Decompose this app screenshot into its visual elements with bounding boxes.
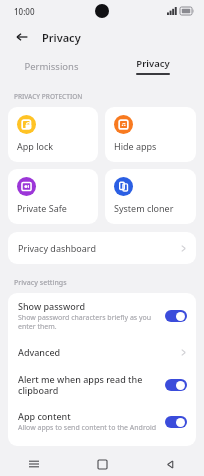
staticText: Allow apps to send content to the Androi… [18,423,157,433]
staticText: Permissions [24,60,79,73]
staticText: App content [18,410,71,422]
staticText: Hide apps [114,140,157,152]
button[interactable]: Advanced [8,338,196,366]
button[interactable]: Back [12,27,32,47]
button[interactable]: Private Safe [8,169,98,224]
button[interactable]: Show password [8,293,196,338]
staticText: System cloner [114,202,174,214]
button[interactable]: Back [136,452,204,476]
button[interactable]: Hide apps [105,107,196,162]
button[interactable]: Privacy [102,52,204,80]
button[interactable]: Toggle on [165,416,187,428]
staticText: Privacy [42,30,81,45]
staticText: PRIVACY PROTECTION [14,92,83,101]
button[interactable]: App content [8,403,196,440]
button[interactable]: Privacy dashboard [8,232,196,264]
staticText: 10:00 [14,6,35,17]
staticText: Alert me when apps read the clipboard [18,373,159,396]
staticText: Privacy dashboard [18,242,96,254]
staticText: Private Safe [17,202,67,214]
staticText: Advanced [18,346,181,358]
button[interactable]: System cloner [105,169,196,224]
staticText: App lock [17,140,54,152]
button[interactable]: Alert me when apps read the clipboard [8,366,196,403]
button[interactable]: Recent apps [0,452,68,476]
staticText: Privacy settings [14,278,67,288]
button[interactable]: App lock [8,107,98,162]
staticText: Show password characters briefly as you … [18,313,159,331]
staticText: Show password [18,300,85,312]
button[interactable]: Home [68,452,136,476]
staticText: Privacy [136,57,170,70]
button[interactable]: Toggle on [165,379,187,391]
button[interactable]: Permissions [0,52,102,80]
button[interactable]: Toggle on [165,310,187,322]
